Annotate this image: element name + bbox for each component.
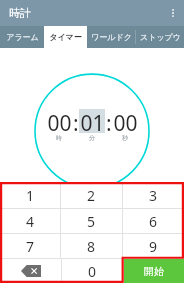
button[interactable]: アラーム xyxy=(0,26,44,48)
staticText: 00 xyxy=(113,109,138,133)
staticText: 7 xyxy=(26,237,35,256)
button[interactable]: 2 xyxy=(61,183,122,208)
staticText: 5 xyxy=(87,212,96,231)
staticText: 6 xyxy=(149,212,158,231)
staticText: 3 xyxy=(149,186,158,205)
button[interactable]: More options xyxy=(162,0,184,26)
staticText: 分 xyxy=(89,134,95,142)
button[interactable]: タイマー xyxy=(44,26,87,48)
staticText: 00 xyxy=(47,109,72,133)
staticText: 開始 xyxy=(144,265,164,278)
button[interactable]: 6 xyxy=(123,209,184,233)
staticText: 2 xyxy=(87,186,96,205)
button[interactable]: 00 xyxy=(46,109,72,133)
staticText: 時計 xyxy=(9,6,31,20)
staticText: アラーム xyxy=(6,32,39,42)
button[interactable]: 5 xyxy=(61,209,122,233)
staticText: 0 xyxy=(88,262,97,281)
button[interactable]: 1 xyxy=(0,183,60,208)
button[interactable]: 7 xyxy=(0,234,60,258)
staticText: 9 xyxy=(149,237,158,256)
staticText: タイマー xyxy=(49,32,82,42)
button[interactable]: 4 xyxy=(0,209,60,233)
button[interactable]: 9 xyxy=(123,234,184,258)
button[interactable]: ストップウ xyxy=(136,26,184,48)
button[interactable]: Backspace xyxy=(0,259,61,283)
staticText: : xyxy=(106,109,112,133)
staticText: 1 xyxy=(26,186,35,205)
staticText: 4 xyxy=(26,212,35,231)
button[interactable]: 01 xyxy=(79,109,105,133)
button[interactable]: 8 xyxy=(61,234,122,258)
staticText: : xyxy=(73,109,79,133)
button[interactable]: ワールドク xyxy=(87,26,135,48)
staticText: 8 xyxy=(87,237,96,256)
staticText: 時 xyxy=(56,134,62,142)
staticText: ストップウ xyxy=(140,32,181,42)
button[interactable]: 00 xyxy=(112,109,138,133)
staticText: ワールドク xyxy=(91,32,132,42)
button[interactable]: 3 xyxy=(123,183,184,208)
button[interactable]: 0 xyxy=(62,259,123,283)
staticText: 秒 xyxy=(122,134,128,142)
staticText: 01 xyxy=(80,109,105,133)
button[interactable]: 開始 xyxy=(124,259,184,283)
